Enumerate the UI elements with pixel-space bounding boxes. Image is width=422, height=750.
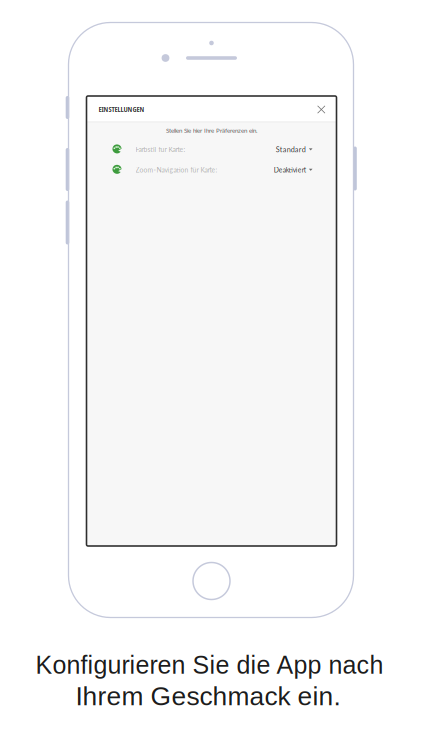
staticText: Farbstil für Karte: (135, 145, 185, 153)
staticText: Standard (276, 145, 306, 154)
staticText: Deaktiviert (274, 166, 306, 174)
button[interactable]: Farbstil für Karte: (86, 139, 336, 160)
button[interactable]: Close (314, 102, 329, 117)
staticText: Stellen Sie hier Ihre Präferenzen ein. (166, 127, 257, 134)
staticText: Ihrem Geschmack ein. (75, 681, 340, 711)
button[interactable]: Zoom-Navigation für Karte: (86, 160, 336, 180)
staticText: Konfigurieren Sie die App nach (35, 651, 383, 679)
staticText: EINSTELLUNGEN (98, 104, 144, 114)
staticText: Zoom-Navigation für Karte: (135, 166, 217, 174)
